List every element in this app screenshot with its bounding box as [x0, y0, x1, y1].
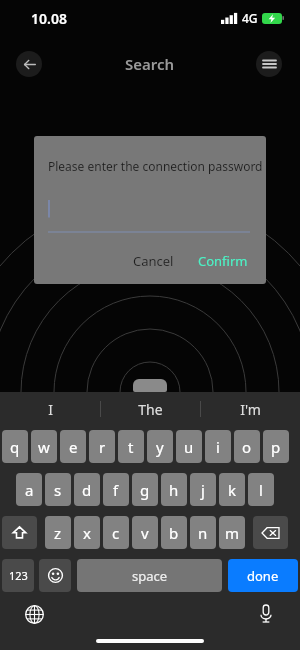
button[interactable]: Cancel: [127, 248, 180, 274]
staticText: s: [54, 480, 62, 500]
button[interactable]: m: [219, 516, 245, 549]
button[interactable]: done: [228, 559, 298, 592]
staticText: i: [216, 437, 220, 457]
button[interactable]: Shift: [2, 516, 37, 549]
staticText: y: [156, 437, 164, 457]
button[interactable]: v: [132, 516, 158, 549]
staticText: The: [138, 400, 163, 419]
staticText: f: [113, 480, 119, 500]
staticText: x: [83, 523, 91, 543]
button[interactable]: q: [2, 430, 28, 463]
staticText: o: [242, 437, 252, 457]
button[interactable]: d: [74, 473, 100, 506]
staticText: q: [10, 437, 20, 457]
button[interactable]: I'm: [201, 392, 300, 426]
button[interactable]: p: [263, 430, 289, 463]
staticText: z: [54, 523, 62, 543]
button[interactable]: f: [103, 473, 129, 506]
button[interactable]: i: [205, 430, 231, 463]
staticText: b: [169, 523, 179, 543]
button[interactable]: o: [234, 430, 260, 463]
button[interactable]: Confirm: [192, 248, 254, 274]
button[interactable]: x: [74, 516, 100, 549]
staticText: k: [228, 480, 237, 500]
button[interactable]: l: [248, 473, 274, 506]
button[interactable]: b: [161, 516, 187, 549]
button[interactable]: Change keyboard: [22, 602, 46, 626]
button[interactable]: s: [45, 473, 71, 506]
button[interactable]: Emoji: [39, 559, 71, 592]
button[interactable]: w: [31, 430, 57, 463]
staticText: n: [198, 523, 208, 543]
staticText: u: [184, 437, 194, 457]
button[interactable]: z: [45, 516, 71, 549]
staticText: 4G: [242, 10, 258, 26]
staticText: c: [112, 523, 120, 543]
button[interactable]: 123: [2, 559, 34, 592]
button[interactable]: u: [176, 430, 202, 463]
staticText: v: [141, 523, 149, 543]
button[interactable]: Menu: [256, 51, 282, 77]
button[interactable]: g: [132, 473, 158, 506]
staticText: a: [25, 480, 34, 500]
button[interactable]: I: [0, 392, 100, 426]
button[interactable]: r: [89, 430, 115, 463]
button[interactable]: n: [190, 516, 216, 549]
staticText: m: [225, 523, 240, 543]
staticText: g: [140, 480, 150, 500]
button[interactable]: The: [101, 392, 200, 426]
staticText: 123: [9, 568, 28, 583]
button[interactable]: Backspace: [253, 516, 288, 549]
staticText: e: [69, 437, 78, 457]
staticText: I'm: [240, 400, 261, 419]
staticText: p: [271, 437, 281, 457]
button[interactable]: h: [161, 473, 187, 506]
staticText: t: [128, 437, 134, 457]
staticText: done: [247, 567, 279, 585]
button[interactable]: Voice input: [254, 602, 278, 626]
staticText: d: [82, 480, 92, 500]
staticText: I: [48, 400, 53, 419]
button[interactable]: a: [16, 473, 42, 506]
staticText: Search: [125, 54, 175, 74]
button[interactable]: j: [190, 473, 216, 506]
staticText: j: [201, 480, 205, 500]
button[interactable]: space: [77, 559, 222, 592]
button[interactable]: Back: [16, 51, 42, 77]
button[interactable]: c: [103, 516, 129, 549]
button[interactable]: e: [60, 430, 86, 463]
staticText: 10.08: [31, 9, 67, 28]
button[interactable]: k: [219, 473, 245, 506]
button[interactable]: t: [118, 430, 144, 463]
staticText: Confirm: [198, 252, 248, 270]
staticText: l: [259, 480, 263, 500]
staticText: h: [169, 480, 179, 500]
staticText: r: [99, 437, 106, 457]
staticText: Please enter the connection password: [48, 158, 263, 174]
staticText: space: [132, 567, 168, 585]
staticText: w: [38, 437, 50, 457]
button[interactable]: y: [147, 430, 173, 463]
staticText: Cancel: [133, 252, 174, 270]
